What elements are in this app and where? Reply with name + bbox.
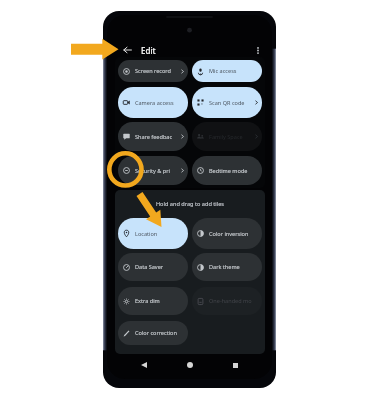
staticText: Location: [135, 230, 184, 238]
button[interactable]: Recent apps: [226, 356, 244, 374]
button[interactable]: Color inversion: [192, 218, 262, 249]
staticText: Screen record: [135, 67, 180, 75]
button[interactable]: Scan QR code: [192, 87, 262, 118]
staticText: Camera access: [135, 99, 184, 107]
staticText: Extra dim: [135, 297, 184, 305]
staticText: Share feedbac: [135, 133, 180, 141]
button[interactable]: Share feedbac: [118, 122, 188, 151]
staticText: Dark theme: [209, 263, 258, 271]
button[interactable]: Mic access: [192, 60, 262, 82]
button[interactable]: Bedtime mode: [192, 156, 262, 185]
button[interactable]: Color correction: [118, 321, 188, 345]
button[interactable]: Screen record: [118, 60, 188, 82]
staticText: Edit: [141, 45, 156, 56]
staticText: Bedtime mode: [209, 167, 258, 175]
button[interactable]: Back: [120, 43, 134, 57]
staticText: Scan QR code: [209, 99, 254, 107]
button[interactable]: More options: [251, 43, 265, 57]
staticText: Hold and drag to add tiles: [115, 200, 265, 208]
staticText: Family Space: [209, 133, 254, 141]
button[interactable]: Camera access: [118, 87, 188, 118]
button[interactable]: Dark theme: [192, 253, 262, 281]
staticText: One-handed mo: [209, 297, 258, 305]
button[interactable]: Family Space: [192, 122, 262, 151]
button[interactable]: Home: [181, 356, 199, 374]
staticText: Security & pri: [135, 167, 180, 175]
button[interactable]: One-handed mo: [192, 287, 262, 315]
button[interactable]: Back: [135, 356, 153, 374]
staticText: Mic access: [209, 67, 258, 75]
staticText: Data Saver: [135, 263, 184, 271]
button[interactable]: Extra dim: [118, 287, 188, 315]
staticText: Color correction: [135, 329, 184, 337]
staticText: Color inversion: [209, 230, 258, 238]
button[interactable]: Data Saver: [118, 253, 188, 281]
button[interactable]: Location: [118, 218, 188, 249]
button[interactable]: Security & pri: [118, 156, 188, 185]
